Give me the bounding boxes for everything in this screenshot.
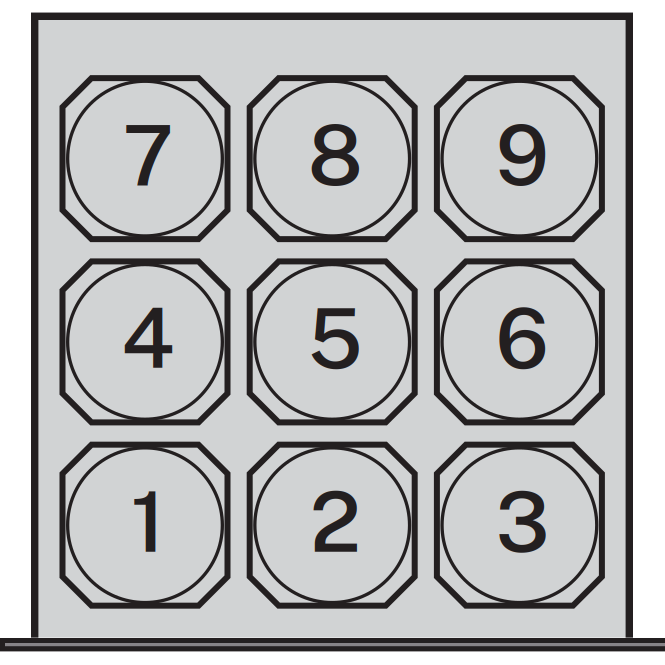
staticText: 6 (495, 288, 549, 387)
button[interactable]: 8 (247, 75, 418, 242)
staticText: 2 (310, 472, 361, 570)
staticText: 3 (495, 472, 549, 570)
button[interactable]: 7 (59, 75, 230, 242)
button[interactable]: 2 (247, 442, 418, 609)
button[interactable]: 3 (434, 442, 605, 609)
button[interactable]: 6 (434, 258, 605, 425)
staticText: 9 (495, 105, 549, 204)
staticText: 4 (121, 288, 175, 387)
button[interactable]: 5 (247, 258, 418, 425)
staticText: 8 (308, 105, 363, 204)
staticText: 1 (130, 472, 165, 570)
staticText: 5 (308, 288, 363, 387)
staticText: 7 (122, 105, 173, 204)
button[interactable]: 4 (59, 258, 230, 425)
button[interactable]: 1 (59, 442, 230, 609)
button[interactable]: 9 (434, 75, 605, 242)
